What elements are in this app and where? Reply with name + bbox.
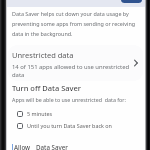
button[interactable]: Allow: [12, 143, 31, 150]
other: Open unrestricted data: [131, 58, 141, 68]
button[interactable]: Data Saver: [36, 143, 68, 150]
staticText: preventing some apps from sending or rec…: [12, 20, 136, 27]
staticText: Data Saver: [36, 143, 68, 150]
staticText: Data Saver helps cut down your data usag…: [12, 10, 129, 17]
staticText: Turn off Data Saver: [12, 83, 81, 93]
staticText: Apps will be able to use unrestricted da…: [12, 96, 126, 103]
button[interactable]: Until you turn Data Saver back on: [0, 120, 150, 131]
button[interactable]: Unrestricted data: [8, 45, 143, 81]
staticText: Until you turn Data Saver back on: [27, 122, 112, 129]
staticText: Allow: [14, 143, 31, 150]
button[interactable]: 5 minutes: [0, 108, 150, 119]
staticText: data in the background.: [12, 30, 73, 37]
button[interactable]: [121, 0, 142, 3]
staticText: 14 of 151 apps allowed to use unrestrict…: [12, 63, 130, 78]
staticText: Unrestricted data: [12, 50, 74, 60]
staticText: 5 minutes: [27, 110, 53, 117]
